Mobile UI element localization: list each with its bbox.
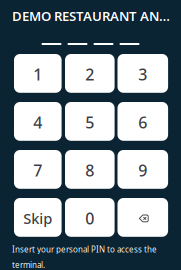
staticText: 9 <box>138 160 147 181</box>
staticText: Insert your personal PIN to access the <box>12 244 157 255</box>
staticText: 6 <box>138 112 147 133</box>
staticText: 2 <box>85 64 94 85</box>
button[interactable]: 9 <box>117 150 168 189</box>
button[interactable]: 5 <box>65 102 115 141</box>
button[interactable]: 3 <box>117 54 168 93</box>
button[interactable]: 6 <box>117 102 168 141</box>
staticText: DEMO RESTAURANT AN… <box>12 7 170 25</box>
staticText: 8 <box>85 160 94 181</box>
staticText: terminal. <box>12 260 45 270</box>
staticText: 3 <box>138 64 147 85</box>
staticText: 0 <box>85 208 94 229</box>
staticText: 1 <box>33 64 42 85</box>
button[interactable]: 8 <box>65 150 115 189</box>
button[interactable]: 1 <box>14 54 62 93</box>
button[interactable]: Delete <box>117 198 168 237</box>
button[interactable]: Skip <box>14 198 62 237</box>
button[interactable]: 7 <box>14 150 62 189</box>
staticText: 4 <box>33 112 42 133</box>
button[interactable]: 2 <box>65 54 115 93</box>
staticText: 7 <box>33 160 42 181</box>
staticText: Skip <box>23 209 52 228</box>
staticText: 5 <box>85 112 94 133</box>
button[interactable]: 0 <box>65 198 115 237</box>
button[interactable]: 4 <box>14 102 62 141</box>
